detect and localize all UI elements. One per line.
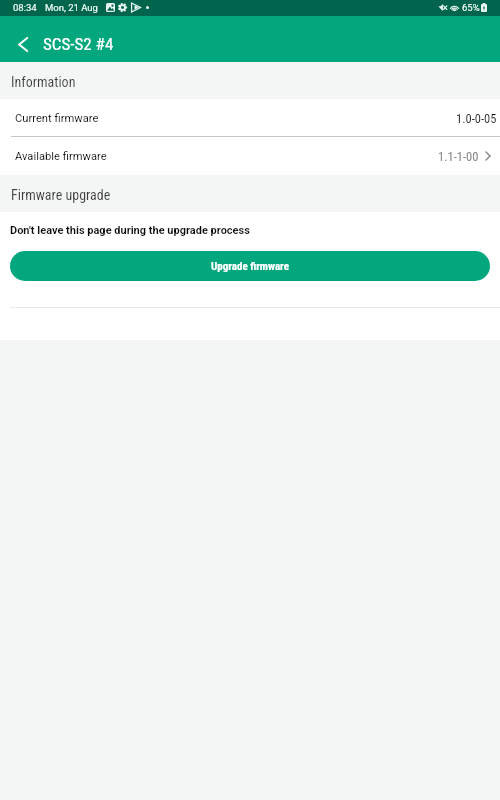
button[interactable]: Upgrade firmware bbox=[10, 251, 490, 281]
staticText: 1.1-1-00 bbox=[438, 149, 479, 164]
staticText: SCS-S2 #4 bbox=[43, 34, 114, 54]
staticText: 1.0-0-05 bbox=[456, 111, 497, 126]
staticText: 65% bbox=[462, 2, 480, 13]
staticText: Information bbox=[11, 74, 76, 90]
staticText: Current firmware bbox=[15, 112, 99, 125]
button[interactable]: Current firmware bbox=[0, 99, 500, 137]
button[interactable]: Available firmware bbox=[0, 137, 500, 175]
staticText: Firmware upgrade bbox=[11, 187, 111, 203]
staticText: 08:34 bbox=[13, 2, 37, 13]
staticText: Available firmware bbox=[15, 150, 107, 163]
button[interactable]: Back bbox=[0, 26, 46, 62]
staticText: Mon, 21 Aug bbox=[45, 2, 98, 13]
staticText: Don't leave this page during the upgrade… bbox=[10, 224, 250, 237]
staticText: Upgrade firmware bbox=[211, 260, 289, 273]
